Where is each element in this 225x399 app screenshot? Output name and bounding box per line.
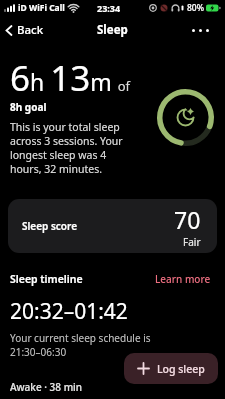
staticText: 8h goal — [10, 100, 47, 114]
staticText: Sleep timeline — [10, 272, 83, 286]
staticText: 23:34 — [97, 2, 121, 14]
staticText: 6h 13m of — [10, 54, 131, 102]
button[interactable]: Learn more — [155, 272, 211, 286]
button[interactable]: Back — [5, 22, 44, 38]
staticText: iD WiFi Call — [18, 2, 65, 14]
staticText: Fair — [183, 235, 201, 249]
button[interactable]: Log sleep — [124, 353, 218, 384]
staticText: 80% — [187, 2, 204, 14]
staticText: Log sleep — [157, 362, 205, 376]
staticText: Sleep score — [22, 219, 77, 233]
staticText: Back — [17, 22, 44, 38]
staticText: Learn more — [155, 272, 211, 286]
staticText: Awake · 38 min — [10, 380, 83, 394]
button[interactable] — [192, 29, 209, 32]
staticText: 20:32–01:42 — [10, 297, 128, 326]
button[interactable]: Sleep score — [8, 199, 217, 253]
staticText: This is your total sleep across 3 sessio… — [10, 120, 123, 176]
staticText: Sleep — [97, 22, 128, 38]
staticText: 70 — [174, 204, 201, 235]
staticText: Your current sleep schedule is 21:30–06:… — [10, 331, 151, 359]
